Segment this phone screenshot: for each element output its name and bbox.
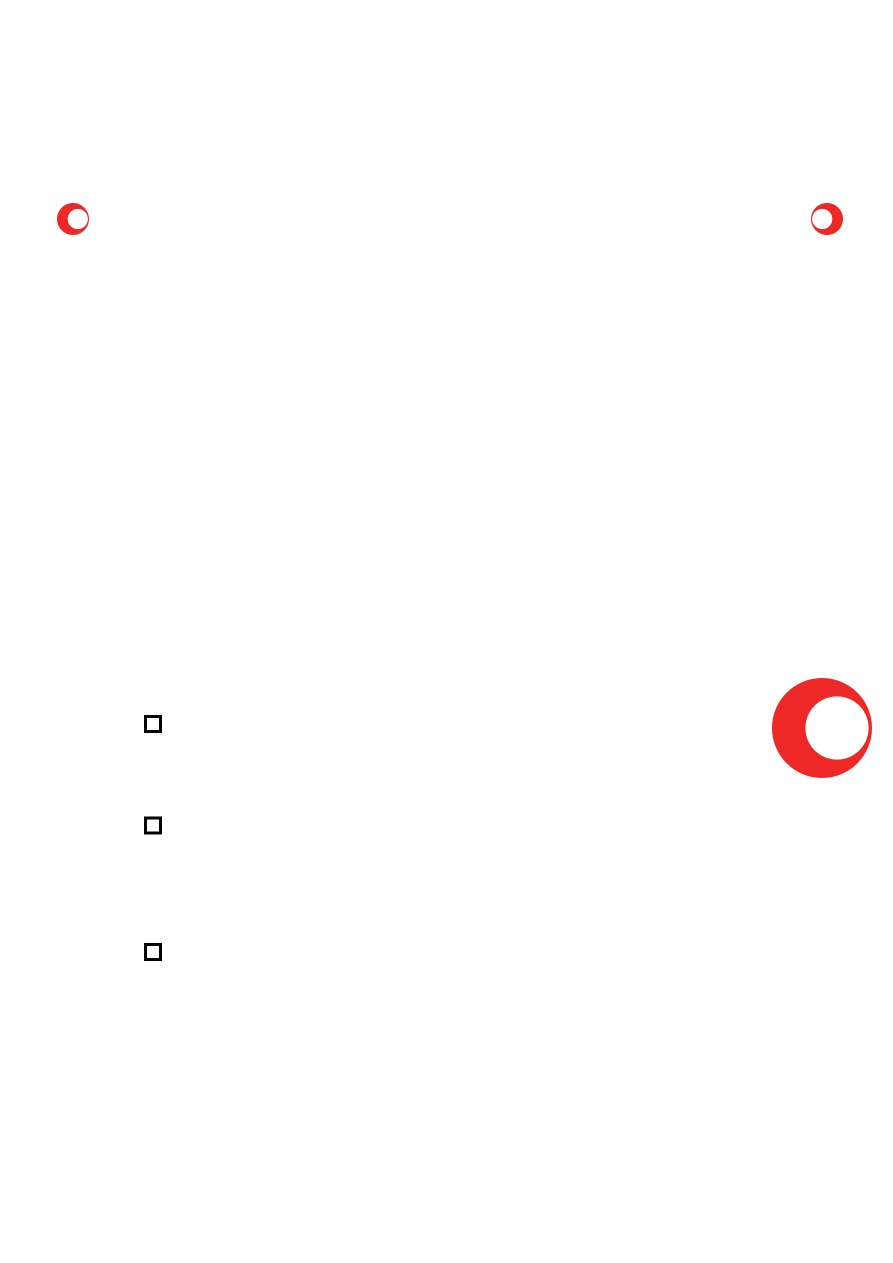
button[interactable]: Back bbox=[51, 197, 95, 241]
button[interactable]: Night mode bbox=[805, 197, 849, 241]
